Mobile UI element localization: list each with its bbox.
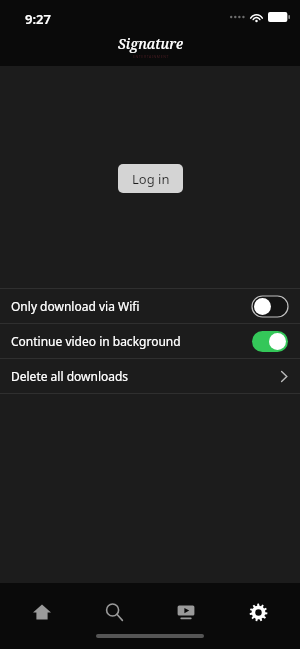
button[interactable]: Continue video in background xyxy=(0,324,300,358)
staticText: Delete all downloads xyxy=(11,368,280,384)
button[interactable]: Log in xyxy=(118,164,183,193)
button[interactable]: Only download via Wifi xyxy=(0,289,300,323)
staticText: Continue video in background xyxy=(11,333,252,349)
staticText: ENTERTAINMENT xyxy=(133,54,169,59)
staticText: Signature xyxy=(118,34,183,53)
button[interactable]: Home xyxy=(12,595,72,629)
button[interactable]: Delete all downloads xyxy=(0,359,300,393)
button[interactable]: Videos xyxy=(156,595,216,629)
staticText: Log in xyxy=(132,170,170,188)
staticText: 9:27 xyxy=(25,10,51,28)
staticText: Only download via Wifi xyxy=(11,298,252,314)
button[interactable]: Search xyxy=(84,595,144,629)
button[interactable]: Settings xyxy=(228,595,288,629)
